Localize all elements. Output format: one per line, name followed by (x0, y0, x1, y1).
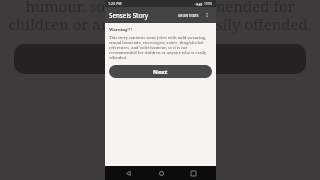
staticText: …▮▲▮ (194, 2, 203, 6)
button[interactable]: Back (118, 166, 138, 180)
staticText: Senseis Story (109, 11, 177, 19)
staticText: Next (153, 68, 168, 76)
button[interactable]: More options (202, 10, 212, 20)
staticText: 100% (204, 2, 213, 6)
staticText: 1:23 PM (108, 1, 122, 6)
staticText: Warning!!! (109, 27, 212, 33)
button[interactable]: Home (151, 166, 171, 180)
staticText: This story contains some jokes with mild… (109, 35, 212, 60)
staticText: humour, so it is not recommended for (0, 0, 320, 12)
staticText: SHOW STATS (178, 13, 199, 18)
staticText: children or anyone who is easily offende… (0, 14, 320, 34)
button[interactable]: Next (109, 65, 212, 78)
button[interactable]: SHOW STATS (177, 11, 200, 20)
button[interactable]: Recent apps (183, 166, 203, 180)
